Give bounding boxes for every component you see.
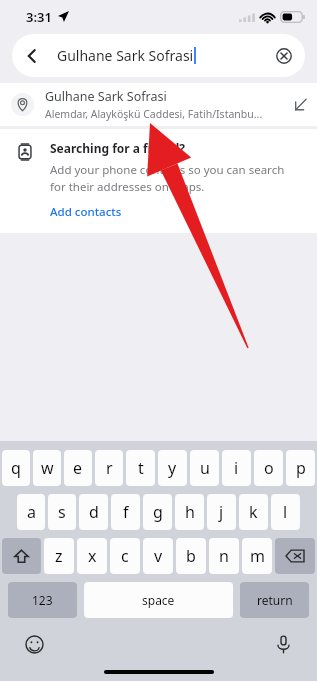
button[interactable]: return [240,582,309,618]
button[interactable]: v [143,538,173,574]
button[interactable]: m [242,538,272,574]
staticText: h [185,501,195,523]
button[interactable]: Dictation [269,630,297,658]
button[interactable]: Backspace [275,538,315,574]
staticText: z [55,545,63,567]
button[interactable]: n [209,538,239,574]
staticText: Add contacts [50,204,122,220]
staticText: Gulhane Sark Sofrasi [57,46,194,65]
button[interactable]: s [48,494,76,530]
button[interactable]: Use this suggestion [284,83,317,126]
button[interactable]: y [158,450,187,486]
button[interactable]: k [239,494,268,530]
staticText: w [41,457,54,479]
button[interactable]: h [175,494,204,530]
button[interactable]: b [176,538,206,574]
button[interactable]: w [33,450,61,486]
button[interactable]: e [64,450,92,486]
staticText: u [200,457,210,479]
staticText: x [88,545,97,567]
button[interactable]: t [126,450,155,486]
staticText: Alemdar, Alayköşkü Caddesi, Fatih/Istanb… [45,107,263,121]
staticText: o [264,457,274,479]
button[interactable]: j [207,494,236,530]
button[interactable]: f [111,494,140,530]
button[interactable]: 123 [8,582,77,618]
staticText: b [186,545,196,567]
staticText: m [250,545,265,567]
staticText: s [58,501,66,523]
staticText: n [219,545,229,567]
staticText: Searching for a friend? [50,140,185,156]
staticText: j [219,501,224,523]
staticText: v [154,545,163,567]
staticText: f [123,501,129,523]
button[interactable]: i [222,450,251,486]
staticText: l [283,501,288,523]
button[interactable]: z [44,538,74,574]
button[interactable]: l [271,494,300,530]
button[interactable]: Add contacts [50,204,122,220]
staticText: q [11,457,21,479]
staticText: Gulhane Sark Sofrasi [45,88,167,105]
button[interactable]: u [190,450,219,486]
button[interactable]: g [143,494,172,530]
staticText: y [168,457,177,479]
button[interactable]: o [254,450,283,486]
button[interactable]: q [2,450,30,486]
staticText: Add your phone contacts so you can searc… [50,162,301,194]
button[interactable]: Shift [2,538,41,574]
button[interactable]: x [77,538,107,574]
button[interactable]: a [17,494,45,530]
staticText: 3:31 [26,8,52,26]
staticText: 123 [32,592,53,608]
button[interactable]: r [95,450,123,486]
staticText: c [121,545,129,567]
staticText: i [234,457,239,479]
button[interactable]: Clear search [263,35,305,77]
staticText: space [142,592,175,608]
staticText: k [249,501,258,523]
button[interactable]: Back [12,36,52,76]
button[interactable]: p [286,450,315,486]
staticText: p [296,457,306,479]
button[interactable]: Emoji [20,630,48,658]
button[interactable]: Searching for a friend? [0,129,317,233]
staticText: e [73,457,83,479]
staticText: r [106,457,113,479]
button[interactable]: d [79,494,108,530]
staticText: return [257,592,293,608]
button[interactable]: c [110,538,140,574]
staticText: g [153,501,163,523]
staticText: d [89,501,99,523]
button[interactable]: space [84,582,233,618]
staticText: a [27,501,36,523]
button[interactable]: Gulhane Sark Sofrasi [0,83,317,126]
staticText: t [138,457,144,479]
